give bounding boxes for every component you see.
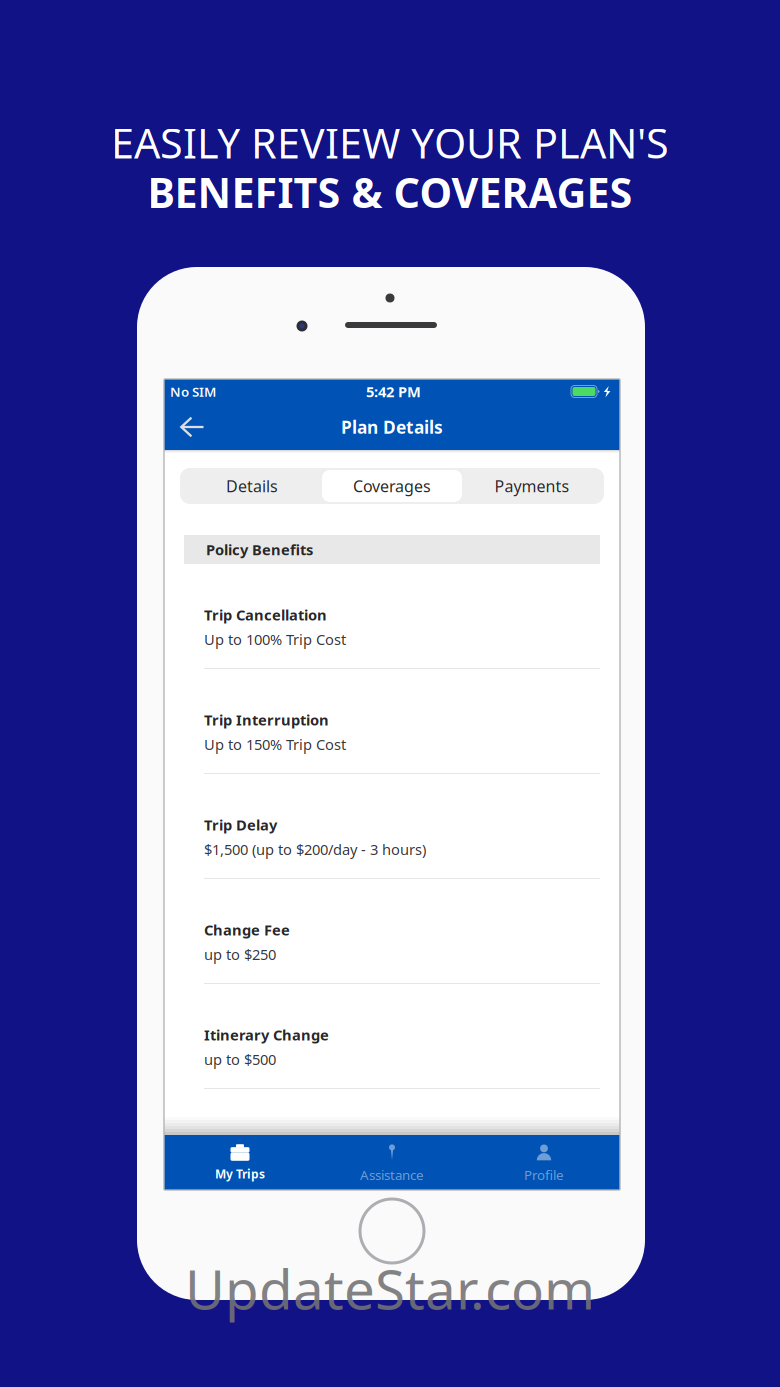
staticText: Up to 100% Trip Cost: [204, 629, 346, 649]
button[interactable]: My Trips: [164, 1135, 316, 1190]
staticText: EASILY REVIEW YOUR PLAN'S: [111, 115, 669, 170]
staticText: No SIM: [170, 383, 216, 400]
staticText: Trip Interruption: [204, 710, 329, 729]
staticText: $1,500 (up to $200/day - 3 hours): [204, 839, 426, 859]
staticText: Profile: [524, 1166, 564, 1184]
staticText: up to $500: [204, 1049, 276, 1069]
button[interactable]: Payments: [462, 470, 602, 502]
staticText: Policy Benefits: [206, 540, 313, 559]
staticText: Trip Delay: [204, 815, 277, 834]
staticText: BENEFITS & COVERAGES: [147, 165, 632, 219]
staticText: 5:42 PM: [366, 382, 421, 401]
staticText: My Trips: [215, 1166, 265, 1182]
button[interactable]: Assistance: [316, 1135, 468, 1190]
staticText: Trip Cancellation: [204, 605, 327, 624]
staticText: Details: [226, 475, 278, 497]
staticText: Up to 150% Trip Cost: [204, 734, 346, 754]
button[interactable]: Coverages: [322, 470, 462, 502]
staticText: Itinerary Change: [204, 1025, 329, 1044]
button[interactable]: Details: [182, 470, 322, 502]
button[interactable]: Back: [172, 404, 211, 450]
staticText: Assistance: [360, 1166, 424, 1184]
staticText: Change Fee: [204, 920, 290, 939]
button[interactable]: Profile: [468, 1135, 620, 1190]
staticText: up to $250: [204, 944, 276, 964]
staticText: Payments: [494, 475, 569, 497]
staticText: Coverages: [353, 475, 431, 497]
staticText: Plan Details: [341, 415, 443, 438]
staticText: UpdateStar.com: [185, 1252, 595, 1325]
